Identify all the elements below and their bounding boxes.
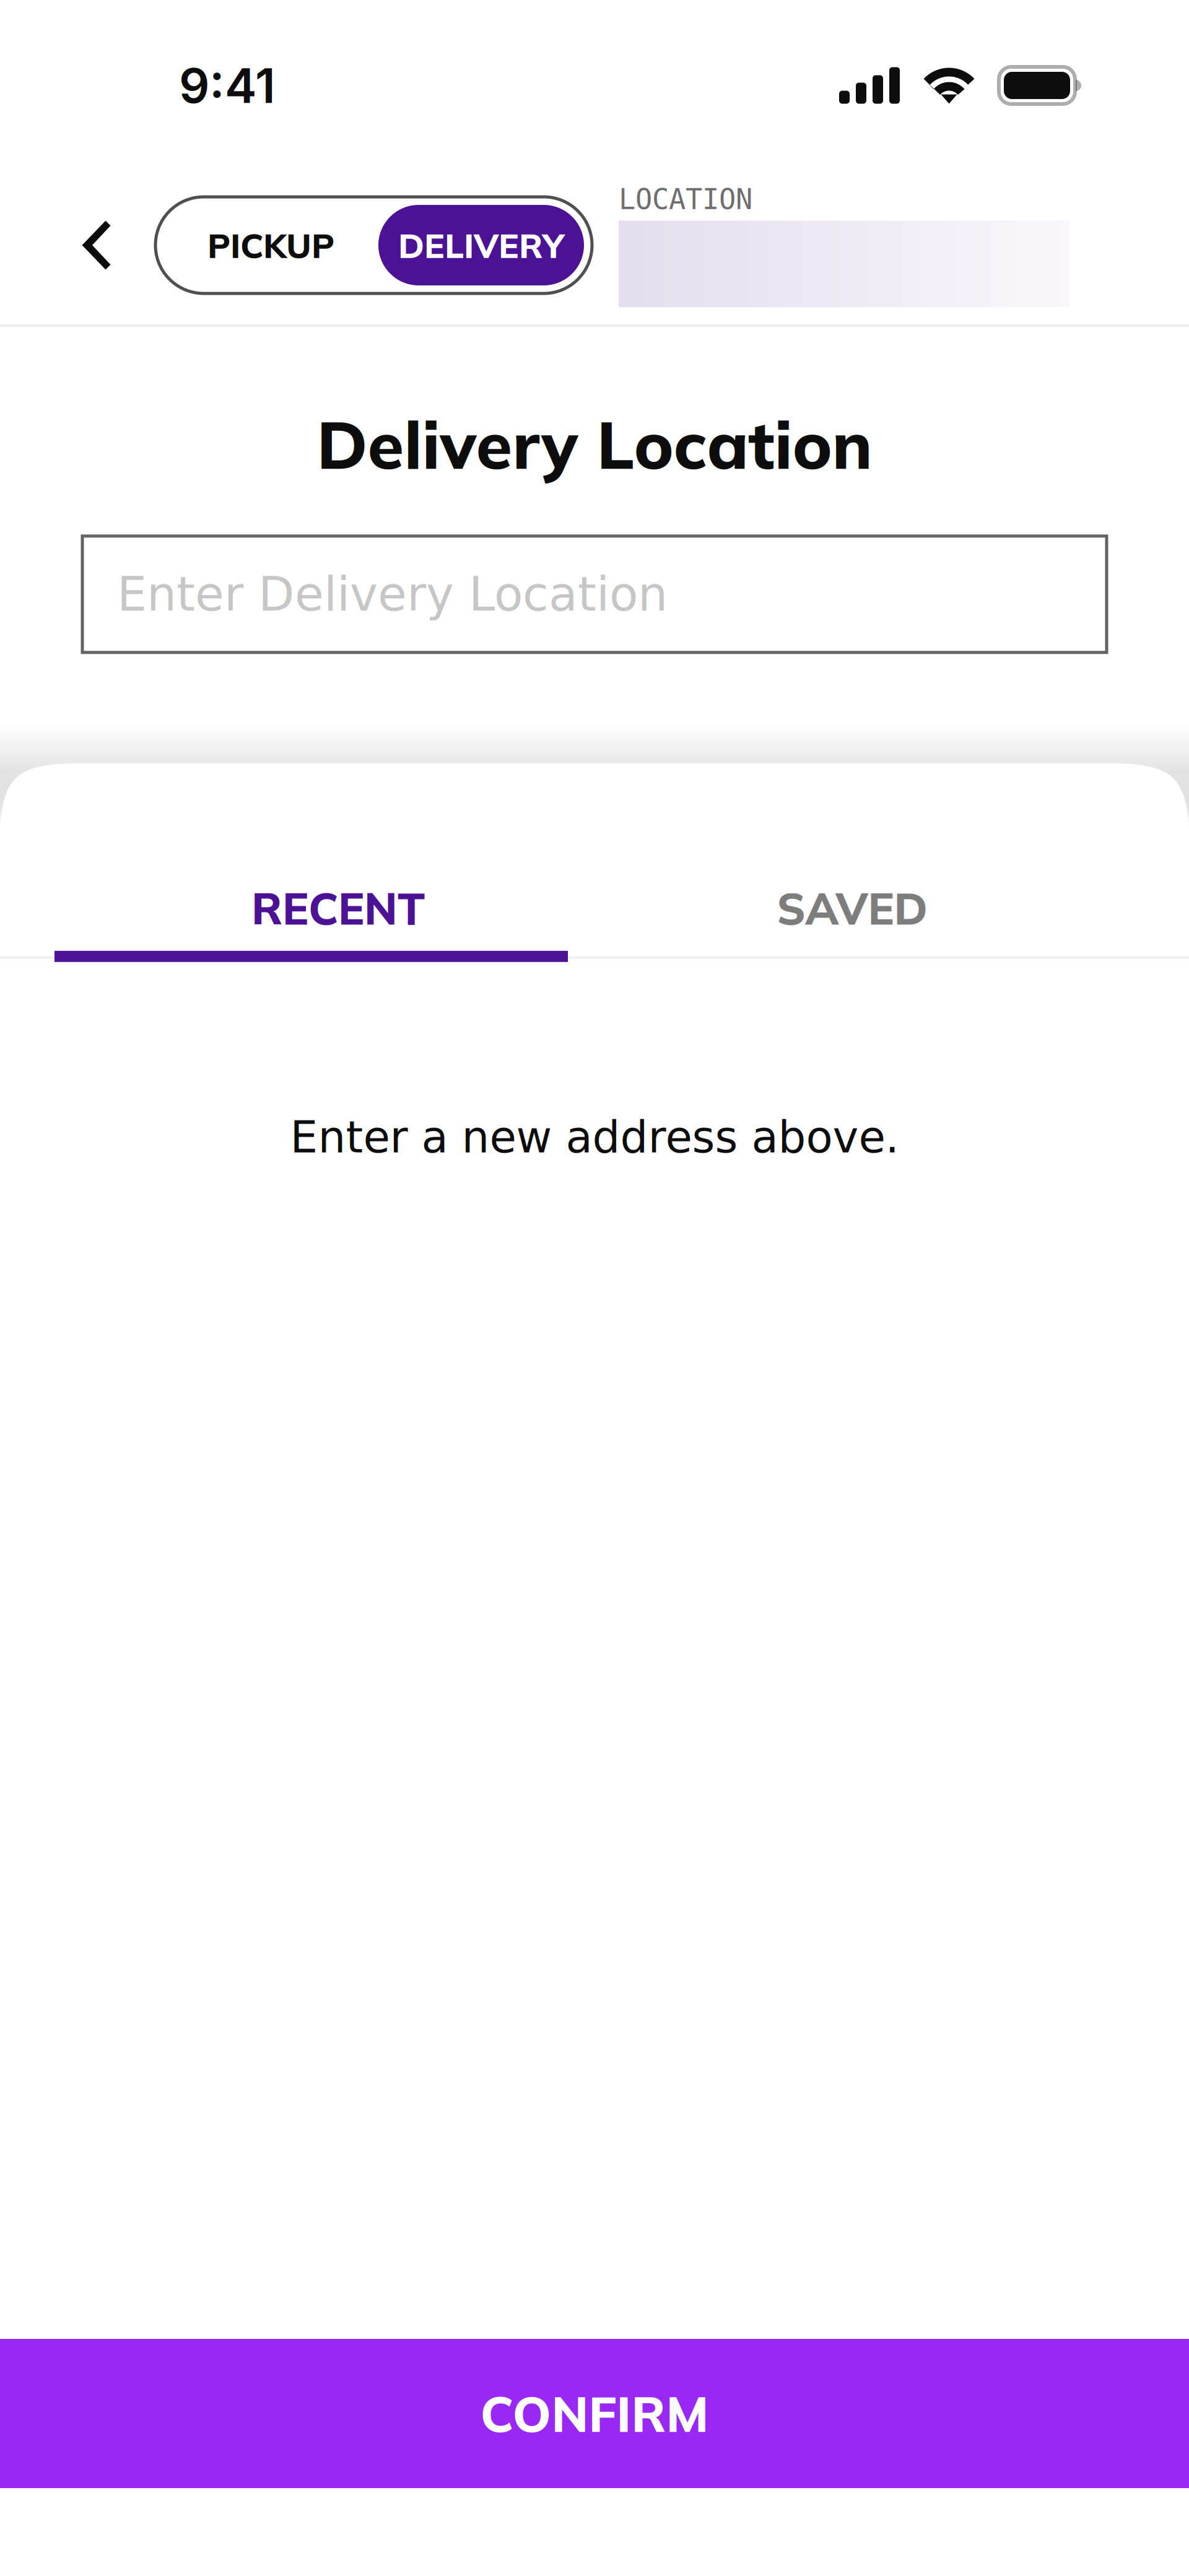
- staticText: CONFIRM: [480, 2383, 709, 2444]
- staticText: SAVED: [777, 881, 927, 936]
- staticText: Delivery Location: [317, 402, 872, 485]
- staticText: Enter a new address above.: [290, 1112, 899, 1163]
- staticText: RECENT: [251, 881, 425, 936]
- staticText: DELIVERY: [398, 224, 564, 266]
- button[interactable]: Back: [59, 193, 133, 298]
- button[interactable]: CONFIRM: [0, 2339, 1189, 2488]
- staticText: 9:41: [179, 56, 276, 114]
- staticText: LOCATION: [619, 183, 752, 216]
- staticText: PICKUP: [207, 224, 334, 266]
- button[interactable]: RECENT: [81, 878, 595, 938]
- button[interactable]: SAVED: [595, 878, 1109, 938]
- button[interactable]: Enter Delivery Location: [0, 536, 1189, 652]
- button[interactable]: PICKUP: [155, 197, 592, 293]
- staticText: Enter Delivery Location: [117, 567, 668, 622]
